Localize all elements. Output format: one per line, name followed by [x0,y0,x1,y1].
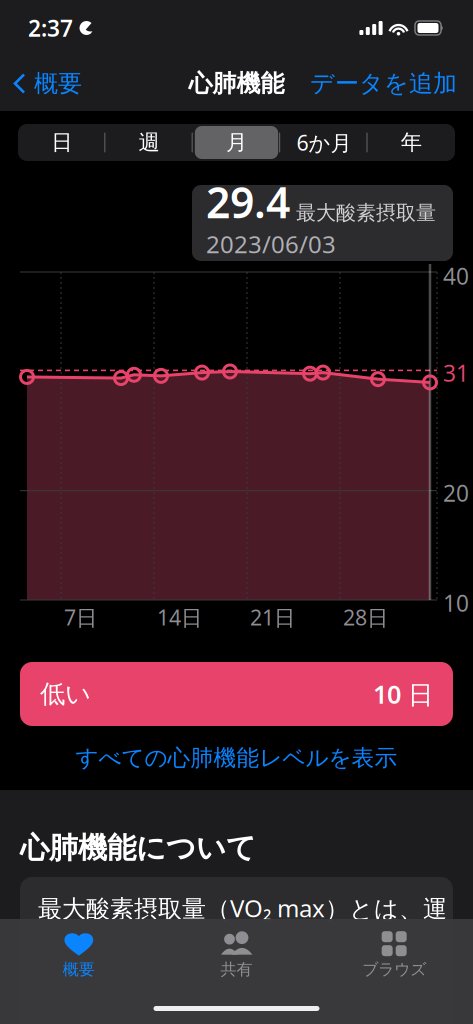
staticText: 31 [443,358,469,388]
staticText: 29.4 [206,173,290,230]
staticText: 2:37 [28,13,73,43]
button[interactable]: 概要 [0,921,158,979]
staticText: ブラウズ [362,960,426,979]
button[interactable]: 年 [368,124,455,161]
staticText: 最大酸素摂取量（VO₂ max）とは、運 [38,892,447,924]
staticText: 6か月 [296,128,351,157]
button[interactable]: 共有 [158,921,315,979]
staticText: データを追加 [310,69,457,98]
staticText: 21日 [250,603,295,631]
staticText: 20 [443,478,469,508]
staticText: 年 [401,129,422,156]
staticText: 7日 [64,603,97,631]
staticText: 10 日 [373,677,433,711]
staticText: 14日 [157,603,202,631]
button[interactable]: データを追加 [310,61,473,106]
button[interactable]: 概要 [0,61,82,106]
button[interactable]: 月 [193,124,280,161]
button[interactable]: 低い [20,662,453,726]
staticText: 低い [40,678,91,709]
staticText: 2023/06/03 [206,228,336,260]
staticText: 共有 [220,960,252,979]
staticText: 最大酸素摂取量 [296,200,436,225]
button[interactable]: すべての心肺機能レベルを表示 [0,738,473,778]
staticText: 40 [443,261,469,291]
staticText: 日 [51,129,72,156]
button[interactable]: 6か月 [280,124,368,161]
staticText: 概要 [34,69,82,98]
button[interactable]: 日 [18,124,105,161]
staticText: 週 [139,129,160,156]
staticText: 概要 [63,960,95,979]
button[interactable]: 週 [105,124,193,161]
staticText: 心肺機能について [20,830,256,866]
staticText: 心肺機能 [188,69,284,98]
staticText: 10 [443,588,469,618]
button[interactable]: ブラウズ [315,921,473,979]
staticText: 月 [226,129,247,156]
staticText: すべての心肺機能レベルを表示 [75,744,397,772]
staticText: 28日 [343,603,388,631]
